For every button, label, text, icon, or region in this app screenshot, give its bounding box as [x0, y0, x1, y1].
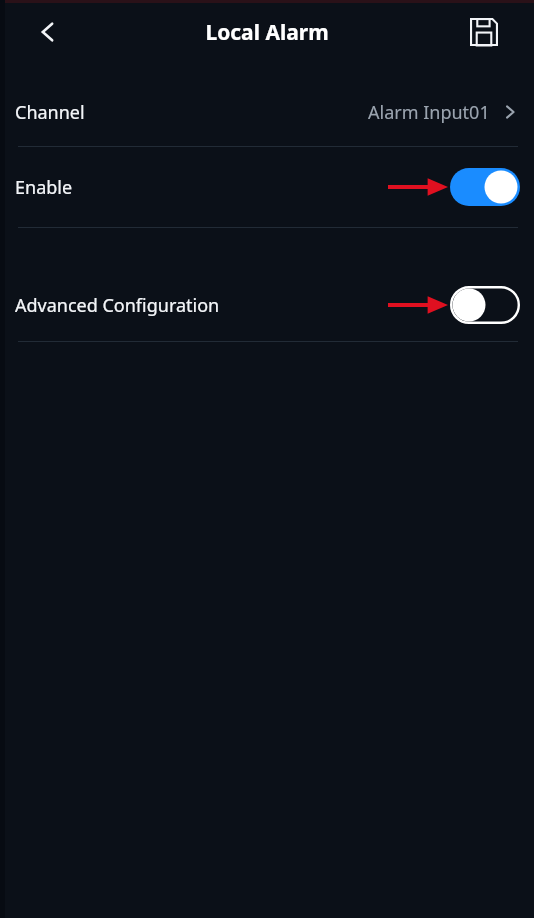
button[interactable]: Enable [450, 168, 520, 206]
button[interactable]: Enable [0, 165, 534, 209]
button[interactable]: Channel [0, 92, 534, 132]
staticText: Channel [15, 100, 85, 125]
staticText: Alarm Input01 [368, 100, 490, 125]
staticText: Enable [15, 175, 73, 200]
staticText: Advanced Configuration [15, 293, 220, 318]
staticText: Local Alarm [205, 18, 329, 47]
button[interactable]: Advanced Configuration [0, 283, 534, 327]
button[interactable]: Back [20, 4, 76, 60]
button[interactable]: Save [460, 8, 508, 56]
button[interactable]: Advanced Configuration [450, 286, 520, 324]
